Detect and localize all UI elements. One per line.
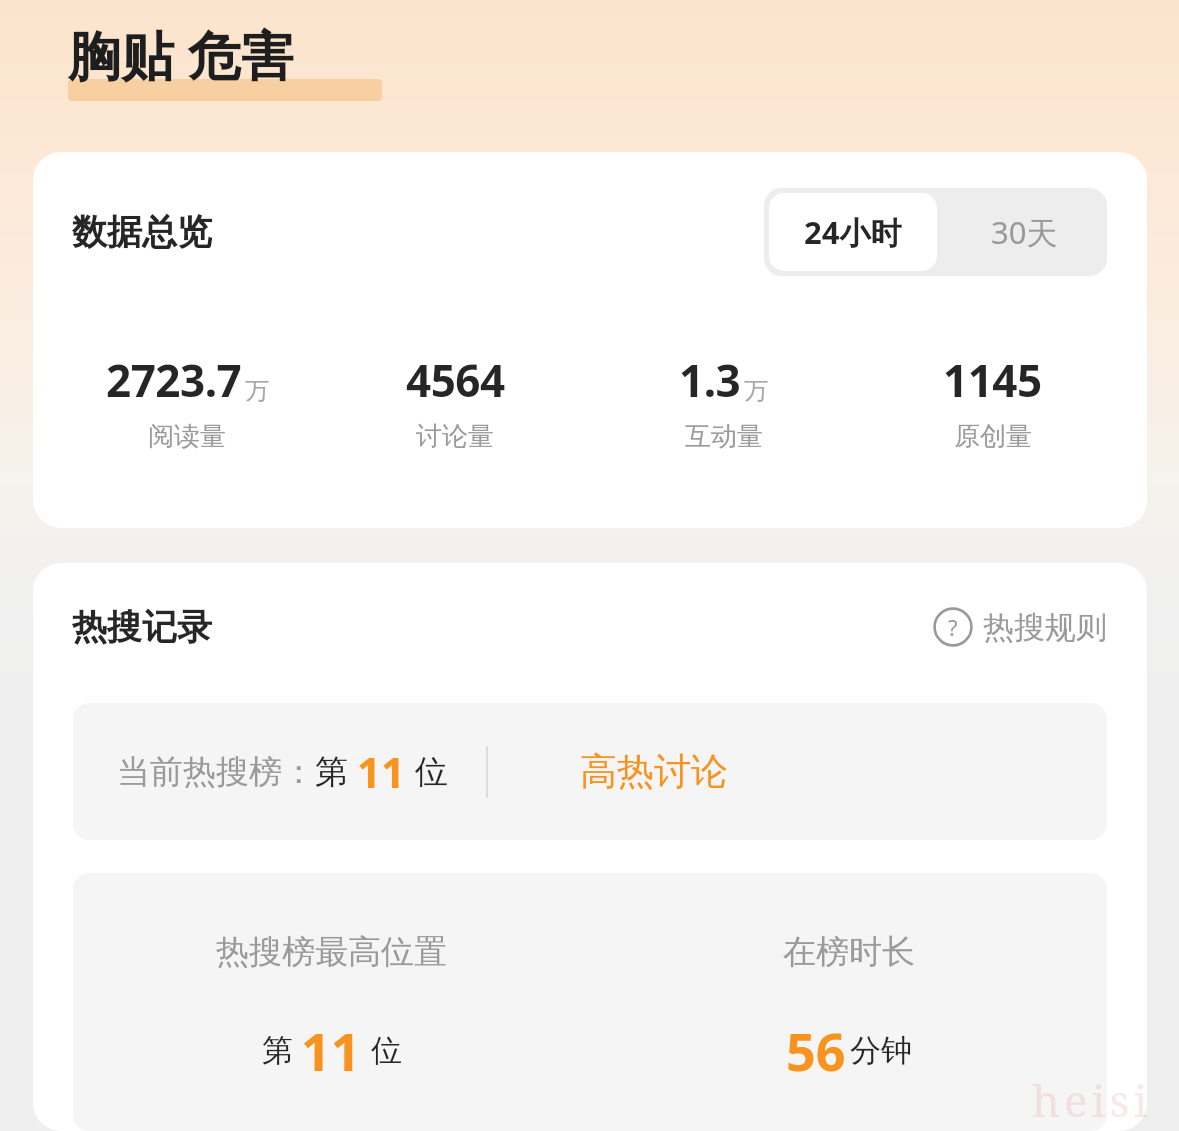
staticText: 11: [357, 743, 406, 800]
staticText: ?: [948, 612, 958, 642]
staticText: 互动量: [685, 420, 763, 453]
staticText: 高热讨论: [580, 748, 728, 795]
staticText: 热搜记录: [72, 605, 212, 649]
staticText: 第: [315, 751, 348, 793]
staticText: 胸贴 危害: [68, 18, 294, 90]
staticText: 1145: [943, 350, 1042, 410]
staticText: 4564: [406, 350, 505, 410]
staticText: 讨论量: [416, 420, 494, 453]
staticText: 当前热搜榜：: [117, 751, 315, 793]
staticText: 数据总览: [72, 210, 212, 254]
staticText: 2723.7: [106, 350, 242, 410]
staticText: 位: [415, 751, 448, 793]
staticText: 阅读量: [148, 420, 226, 453]
staticText: 热搜榜最高位置: [216, 931, 447, 973]
staticText: 56: [786, 1015, 846, 1086]
staticText: 位: [371, 1031, 402, 1070]
staticText: 第: [262, 1031, 293, 1070]
staticText: 在榜时长: [783, 931, 915, 973]
staticText: 万: [744, 376, 768, 406]
button[interactable]: 当前热搜榜：: [73, 703, 1107, 840]
staticText: 24小时: [804, 211, 902, 253]
staticText: 11: [301, 1015, 361, 1086]
button[interactable]: 24小时: [769, 193, 937, 271]
staticText: 分钟: [850, 1031, 912, 1070]
button[interactable]: 30天: [942, 188, 1107, 276]
staticText: heisi: [1032, 1070, 1152, 1130]
staticText: 30天: [991, 211, 1058, 253]
staticText: 1.3: [679, 350, 741, 410]
button[interactable]: 热搜规则: [929, 603, 1111, 651]
staticText: 万: [245, 376, 269, 406]
staticText: 热搜规则: [983, 608, 1107, 647]
staticText: 原创量: [954, 420, 1032, 453]
